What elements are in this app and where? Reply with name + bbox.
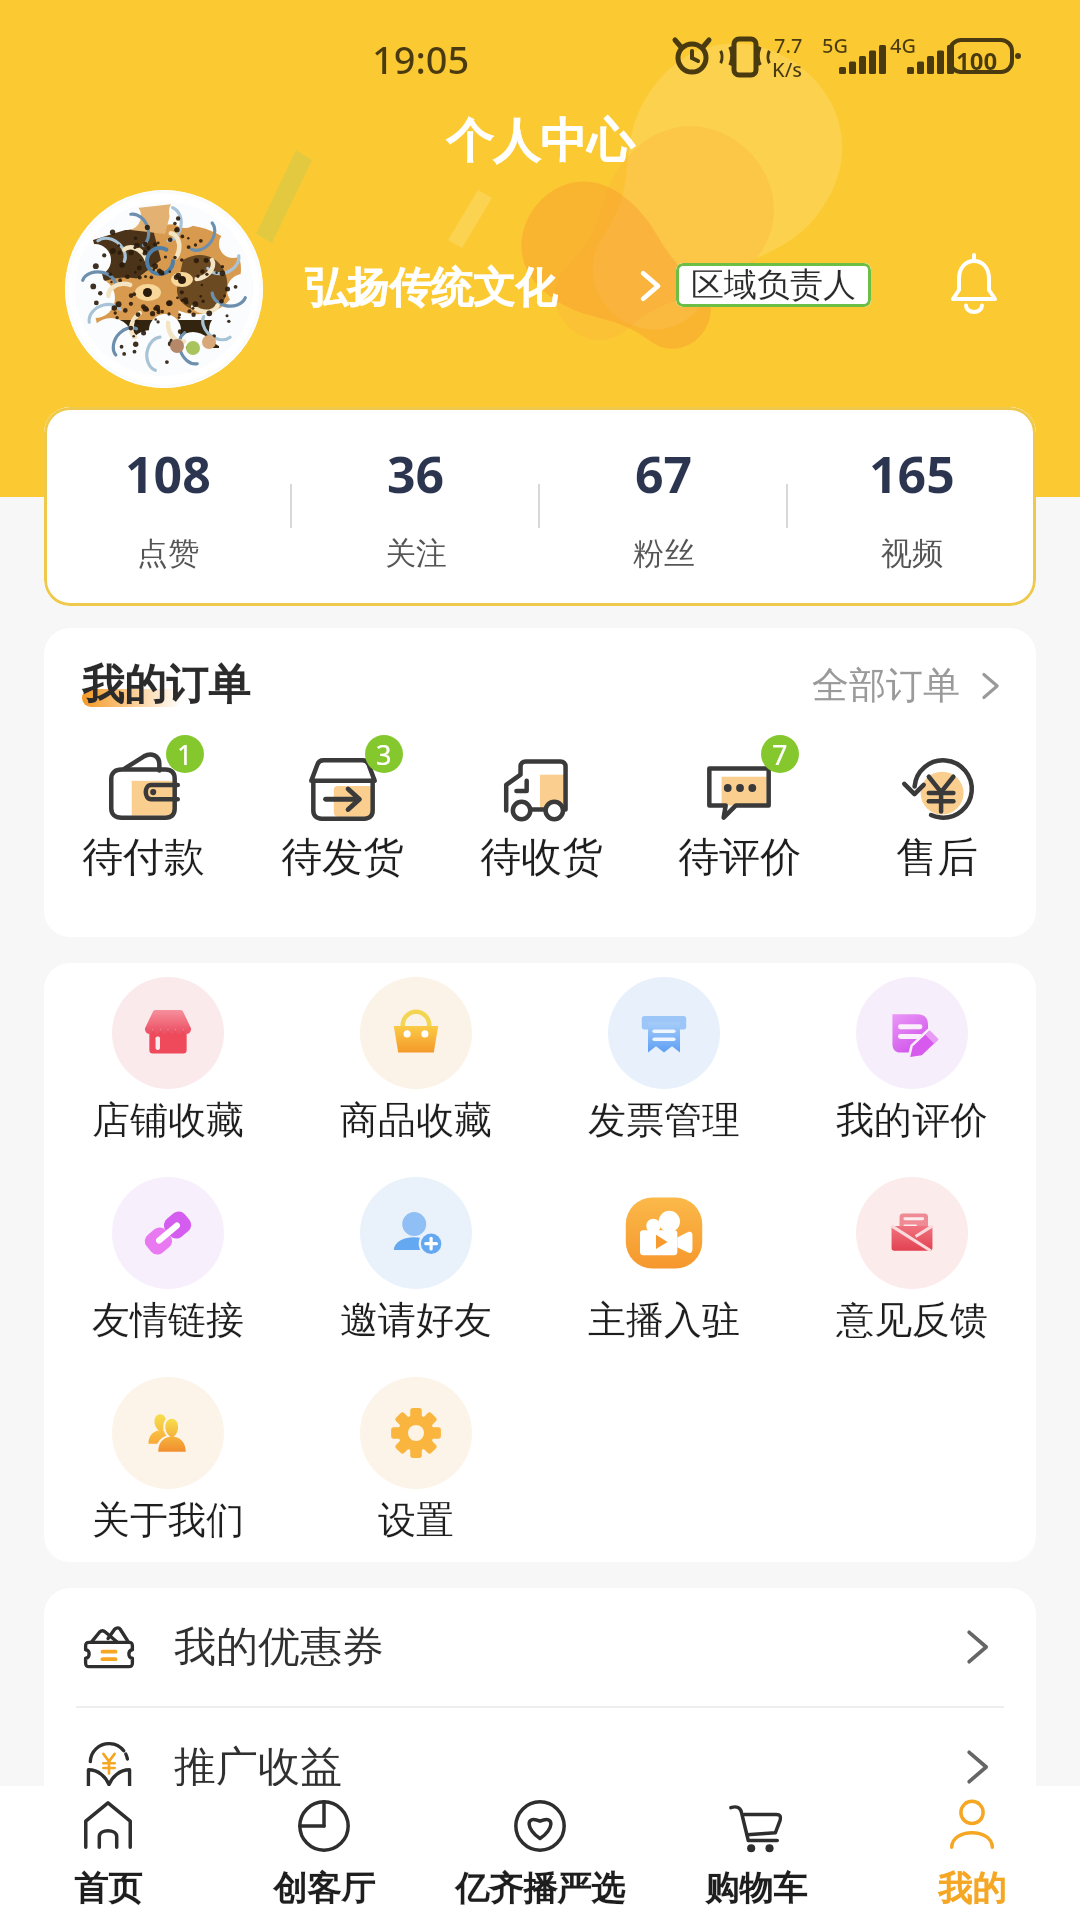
button[interactable]: 3 [243, 740, 442, 884]
button[interactable]: 推广收益 [44, 1708, 1036, 1826]
staticText: K/s [772, 56, 803, 83]
staticText: 关于我们 [92, 1496, 244, 1544]
button[interactable]: 108 [44, 407, 292, 606]
button[interactable]: 设置 [292, 1377, 540, 1562]
staticText: 100 [956, 44, 998, 77]
button[interactable]: 全部订单 [812, 662, 1008, 709]
button[interactable]: 首页 [0, 1786, 216, 1920]
staticText: 区域负责人 [691, 264, 856, 306]
staticText: 165 [869, 440, 955, 508]
button[interactable]: 友情链接 [44, 1177, 292, 1377]
staticText: 弘扬传统文化 [305, 262, 557, 315]
button[interactable]: 亿齐播严选 [432, 1786, 648, 1920]
button[interactable]: Notifications [936, 248, 1012, 324]
staticText: 设置 [378, 1496, 454, 1544]
button[interactable]: 店铺收藏 [44, 977, 292, 1177]
button[interactable]: 7 [640, 740, 838, 884]
button[interactable]: Avatar [65, 190, 263, 388]
button[interactable]: 1 [44, 740, 243, 884]
staticText: 4G [890, 32, 916, 59]
staticText: 店铺收藏 [92, 1096, 244, 1144]
staticText: 购物车 [705, 1867, 807, 1910]
staticText: 个人中心 [446, 112, 634, 171]
button[interactable]: 意见反馈 [788, 1177, 1036, 1377]
staticText: 发票管理 [588, 1096, 740, 1144]
staticText: 邀请好友 [340, 1296, 492, 1344]
staticText: 推广收益 [174, 1741, 342, 1794]
staticText: 主播入驻 [588, 1296, 740, 1344]
staticText: 视频 [881, 534, 943, 573]
staticText: 7 [772, 736, 788, 773]
staticText: 我的订单 [82, 659, 250, 712]
staticText: 粉丝 [633, 534, 695, 573]
button[interactable]: 待收货 [442, 740, 640, 884]
button[interactable]: 创客厅 [216, 1786, 432, 1920]
staticText: 待收货 [480, 832, 603, 884]
staticText: 7.7 [774, 32, 803, 59]
staticText: 售后 [896, 832, 978, 884]
staticText: 5G [822, 32, 848, 59]
staticText: 友情链接 [92, 1296, 244, 1344]
button[interactable]: 我的评价 [788, 977, 1036, 1177]
button[interactable]: 发票管理 [540, 977, 788, 1177]
staticText: 亿齐播严选 [455, 1867, 625, 1910]
button[interactable]: 165 [788, 407, 1036, 606]
staticText: 1 [177, 736, 193, 773]
button[interactable]: 商品收藏 [292, 977, 540, 1177]
button[interactable]: 67 [540, 407, 788, 606]
staticText: 全部订单 [812, 662, 960, 709]
staticText: 首页 [74, 1867, 142, 1910]
button[interactable]: 售后 [838, 740, 1036, 884]
button[interactable]: 我的优惠券 [44, 1588, 1036, 1706]
staticText: 待付款 [82, 832, 205, 884]
button[interactable]: 关于我们 [44, 1377, 292, 1562]
button[interactable]: 区域负责人 [676, 263, 871, 307]
staticText: 我的评价 [836, 1096, 988, 1144]
staticText: 我的优惠券 [174, 1621, 384, 1674]
button[interactable]: 邀请好友 [292, 1177, 540, 1377]
button[interactable]: 主播入驻 [540, 1177, 788, 1377]
staticText: 36 [387, 440, 445, 508]
staticText: 意见反馈 [836, 1296, 988, 1344]
staticText: 商品收藏 [340, 1096, 492, 1144]
staticText: 19:05 [372, 33, 470, 85]
staticText: 待评价 [678, 832, 801, 884]
button[interactable]: 36 [292, 407, 540, 606]
staticText: 3 [376, 736, 392, 773]
staticText: 点赞 [137, 534, 199, 573]
staticText: 108 [125, 440, 211, 508]
staticText: 待发货 [281, 832, 404, 884]
button[interactable]: 购物车 [648, 1786, 864, 1920]
staticText: 关注 [385, 534, 447, 573]
button[interactable]: 我的 [864, 1786, 1080, 1920]
staticText: 67 [635, 440, 693, 508]
staticText: 我的 [938, 1867, 1006, 1910]
staticText: 创客厅 [273, 1867, 375, 1910]
